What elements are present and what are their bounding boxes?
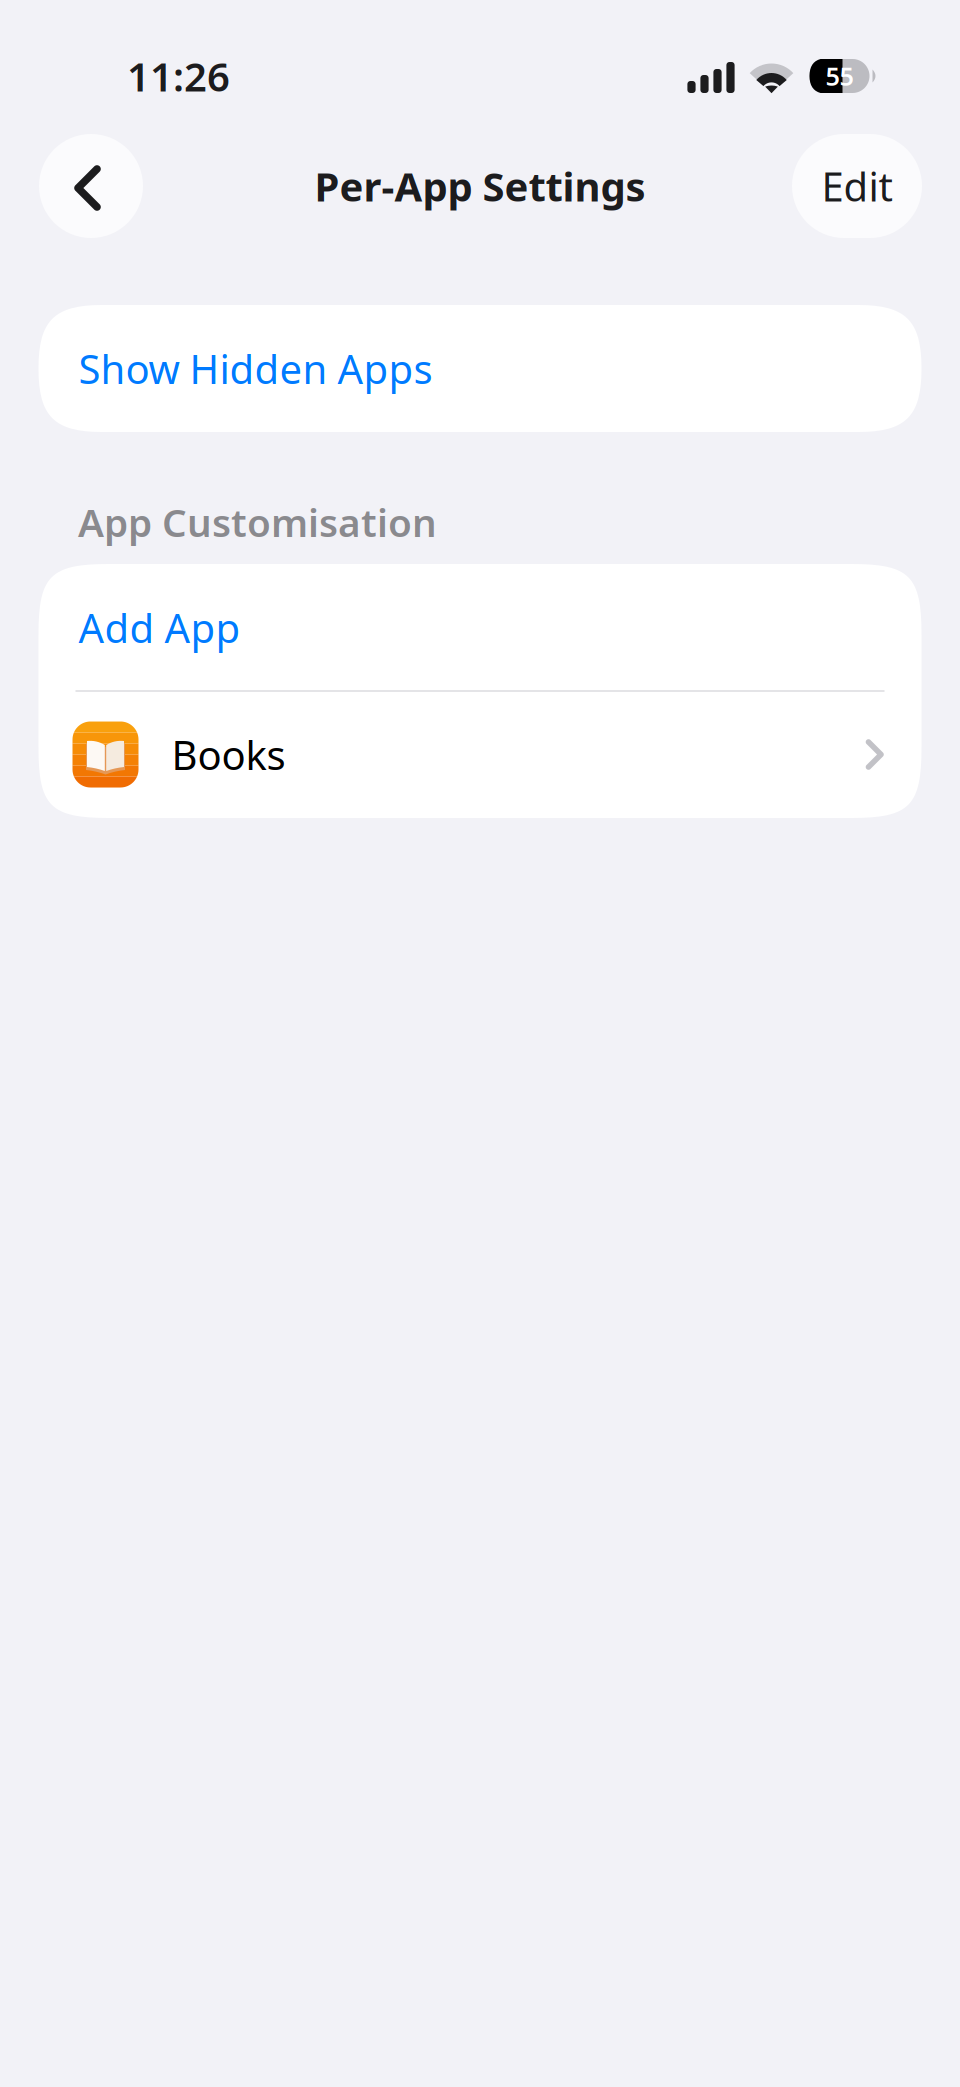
button[interactable]: Back (39, 134, 143, 238)
button[interactable]: Edit (792, 134, 922, 238)
staticText: Edit (821, 159, 892, 212)
staticText: 55 (825, 59, 853, 93)
button[interactable]: Add App (38, 564, 921, 691)
staticText: App Customisation (78, 496, 437, 548)
button[interactable]: Books (38, 691, 921, 818)
staticText: Per-App Settings (314, 159, 645, 212)
staticText: Add App (78, 601, 240, 654)
staticText: Show Hidden Apps (78, 342, 432, 395)
button[interactable]: Show Hidden Apps (38, 305, 921, 432)
staticText: Books (171, 728, 285, 781)
staticText: 11:26 (127, 49, 230, 102)
